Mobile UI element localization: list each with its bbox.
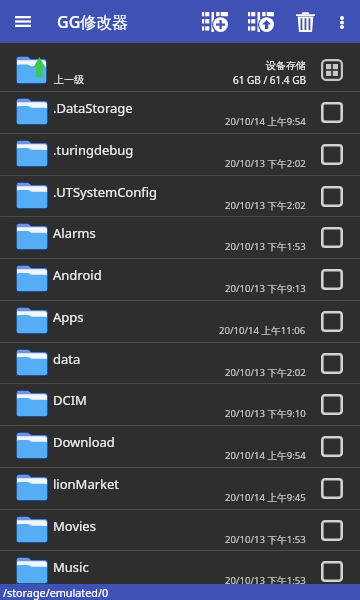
staticText: 61 GB / 61.4 GB — [233, 73, 306, 87]
staticText: Download — [53, 433, 115, 451]
staticText: 20/10/13 下午1:53 — [225, 533, 306, 546]
button[interactable]: Select .UTSystemConfig — [314, 180, 350, 212]
button[interactable]: Switch to grid view — [316, 56, 348, 84]
staticText: 20/10/13 下午9:10 — [225, 407, 306, 420]
staticText: /storage/emulated/0 — [3, 585, 109, 600]
staticText: 20/10/14 上午9:45 — [225, 491, 306, 504]
staticText: 20/10/13 下午2:02 — [225, 366, 306, 379]
staticText: 20/10/13 下午2:02 — [225, 157, 306, 170]
staticText: lionMarket — [53, 475, 120, 493]
staticText: Android — [53, 266, 102, 284]
staticText: .DataStorage — [53, 99, 133, 117]
button[interactable]: Upload — [238, 6, 284, 37]
button[interactable]: .turingdebug — [0, 133, 360, 175]
button[interactable]: Movies — [0, 509, 360, 551]
staticText: .turingdebug — [53, 141, 134, 159]
staticText: 20/10/13 下午2:02 — [225, 199, 306, 212]
staticText: 20/10/14 上午9:54 — [225, 449, 306, 462]
staticText: 上一级 — [54, 73, 84, 86]
button[interactable]: Select Movies — [314, 514, 350, 546]
staticText: 20/10/13 下午9:13 — [225, 282, 306, 295]
button[interactable]: Add new item — [192, 6, 238, 37]
button[interactable]: Select lionMarket — [314, 472, 350, 504]
button[interactable]: data — [0, 342, 360, 384]
staticText: 设备存储 — [266, 59, 306, 72]
button[interactable]: Select DCIM — [314, 388, 350, 420]
button[interactable]: Select Download — [314, 430, 350, 462]
button[interactable]: Delete — [288, 5, 322, 38]
staticText: 20/10/14 上午9:54 — [225, 115, 306, 128]
staticText: 20/10/13 下午1:53 — [225, 574, 306, 587]
button[interactable]: Select .turingdebug — [314, 138, 350, 170]
staticText: Apps — [53, 308, 84, 326]
button[interactable]: Select Android — [314, 263, 350, 295]
staticText: DCIM — [53, 391, 87, 409]
button[interactable]: /storage/emulated/0 — [0, 584, 360, 600]
button[interactable]: Music — [0, 550, 360, 592]
staticText: Music — [53, 558, 89, 576]
button[interactable]: Android — [0, 258, 360, 300]
button[interactable]: DCIM — [0, 383, 360, 425]
button[interactable]: .DataStorage — [0, 91, 360, 133]
staticText: Movies — [53, 517, 96, 535]
button[interactable]: lionMarket — [0, 467, 360, 509]
button[interactable]: Select Apps — [314, 305, 350, 337]
button[interactable]: Apps — [0, 300, 360, 342]
staticText: GG修改器 — [57, 11, 129, 33]
button[interactable]: Alarms — [0, 216, 360, 258]
button[interactable]: Select Alarms — [314, 221, 350, 253]
button[interactable]: Select data — [314, 347, 350, 379]
button[interactable]: Download — [0, 425, 360, 467]
button[interactable]: Select .DataStorage — [314, 96, 350, 128]
button[interactable]: .UTSystemConfig — [0, 175, 360, 217]
button[interactable]: Select Music — [314, 555, 350, 587]
staticText: Alarms — [53, 224, 96, 242]
staticText: 20/10/14 上午11:06 — [219, 324, 306, 337]
staticText: data — [53, 350, 81, 368]
staticText: 20/10/13 下午1:53 — [225, 240, 306, 253]
button[interactable]: Navigation menu — [6, 5, 39, 38]
staticText: .UTSystemConfig — [53, 183, 158, 201]
button[interactable]: 上一级 — [0, 43, 360, 91]
button[interactable]: More options — [327, 6, 357, 38]
